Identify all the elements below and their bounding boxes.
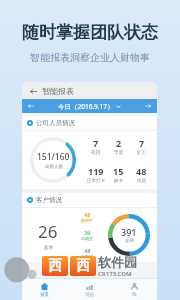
- staticText: 西: [76, 257, 90, 275]
- staticText: 旷工: [137, 150, 146, 156]
- staticText: 7: [139, 137, 145, 149]
- staticText: 休息: [137, 178, 146, 184]
- staticText: 客户情况: [36, 196, 62, 204]
- staticText: 随时掌握团队状态: [22, 22, 158, 43]
- staticText: 我: [132, 292, 137, 298]
- button[interactable]: 今日（2016.9.17）: [36, 102, 143, 111]
- staticText: 跟进中: [81, 218, 93, 223]
- staticText: 出勤人数: [45, 164, 63, 170]
- staticText: 2: [116, 137, 122, 149]
- staticText: 今日（2016.9.17）: [58, 102, 114, 111]
- button[interactable]: Previous day: [26, 101, 36, 111]
- button[interactable]: Next day: [143, 101, 153, 111]
- staticText: 未跟进: [81, 254, 93, 259]
- button[interactable]: 客户情况: [22, 193, 157, 262]
- staticText: 迟到: [91, 150, 100, 156]
- staticText: 151/160: [37, 151, 70, 163]
- staticText: 软件园: [98, 254, 137, 270]
- staticText: 36: [84, 229, 91, 236]
- button[interactable]: 2: [107, 137, 130, 156]
- staticText: 消息: [85, 292, 94, 298]
- staticText: 15: [113, 165, 124, 177]
- staticText: 早退: [114, 150, 123, 156]
- button[interactable]: 119: [84, 165, 107, 184]
- staticText: 48: [84, 247, 91, 254]
- button[interactable]: 15: [107, 165, 130, 184]
- staticText: 48: [136, 165, 147, 177]
- staticText: 智能报表: [42, 86, 74, 96]
- staticText: 全部: [125, 238, 134, 244]
- button[interactable]: Back: [27, 85, 39, 97]
- button[interactable]: 公司人员情况: [22, 116, 157, 189]
- button[interactable]: 我: [112, 279, 157, 300]
- button[interactable]: 7: [130, 137, 153, 156]
- staticText: CR173.COM: [98, 270, 132, 278]
- staticText: 正常打卡: [87, 178, 105, 184]
- staticText: 公司人员情况: [36, 119, 75, 127]
- button[interactable]: 48: [130, 165, 153, 184]
- staticText: 已成交: [81, 236, 93, 241]
- staticText: 48: [84, 211, 91, 218]
- staticText: 首页: [40, 292, 49, 298]
- button[interactable]: 7: [84, 137, 107, 156]
- staticText: 7: [93, 137, 99, 149]
- button[interactable]: 消息: [67, 279, 112, 300]
- staticText: 119: [88, 165, 104, 177]
- staticText: 西: [48, 257, 62, 275]
- staticText: 新增: [44, 245, 53, 251]
- staticText: 26: [38, 220, 58, 243]
- staticText: 缺卡: [114, 178, 123, 184]
- staticText: 391: [121, 226, 137, 238]
- button[interactable]: 首页: [22, 279, 67, 300]
- staticText: 智能报表洞察企业人财物事: [30, 51, 150, 64]
